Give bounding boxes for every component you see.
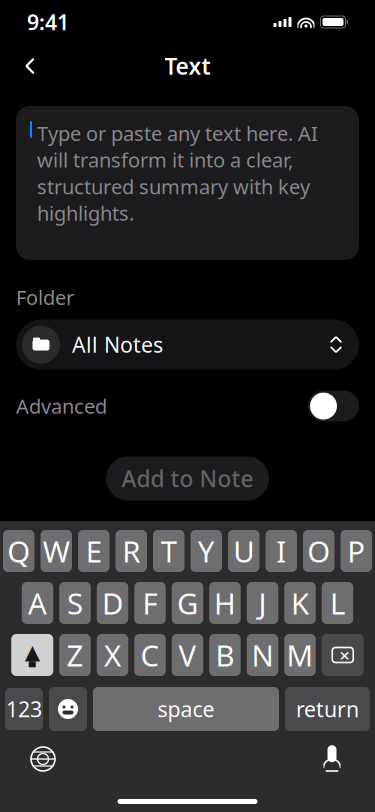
staticText: U: [233, 531, 254, 570]
staticText: C: [140, 635, 159, 674]
button[interactable]: X: [97, 634, 128, 676]
staticText: return: [296, 695, 359, 723]
button[interactable]: D: [97, 582, 128, 624]
button[interactable]: B: [209, 634, 241, 676]
button[interactable]: H: [209, 582, 241, 624]
button[interactable]: N: [247, 634, 278, 676]
button[interactable]: Delete: [322, 634, 364, 676]
button[interactable]: L: [322, 582, 353, 624]
button[interactable]: J: [247, 582, 278, 624]
button[interactable]: E: [78, 530, 109, 572]
button[interactable]: Advanced: [308, 391, 359, 422]
button[interactable]: G: [172, 582, 203, 624]
button[interactable]: I: [265, 530, 297, 572]
button[interactable]: K: [284, 582, 316, 624]
button[interactable]: Z: [59, 634, 91, 676]
button[interactable]: Q: [3, 530, 34, 572]
staticText: Add to Note: [121, 463, 253, 494]
button[interactable]: W: [40, 530, 72, 572]
staticText: N: [251, 635, 273, 674]
button[interactable]: A: [22, 582, 53, 624]
staticText: J: [258, 583, 266, 622]
button[interactable]: R: [115, 530, 147, 572]
staticText: O: [307, 531, 330, 570]
button[interactable]: Emoji: [49, 687, 87, 731]
button[interactable]: F: [134, 582, 166, 624]
staticText: B: [215, 635, 234, 674]
staticText: W: [43, 531, 70, 570]
staticText: Folder: [16, 284, 74, 311]
staticText: G: [177, 583, 198, 622]
staticText: X: [104, 635, 121, 674]
staticText: All Notes: [72, 330, 163, 359]
staticText: H: [214, 583, 236, 622]
button[interactable]: O: [303, 530, 334, 572]
staticText: L: [330, 583, 345, 622]
staticText: V: [178, 635, 196, 674]
staticText: E: [86, 531, 102, 570]
button[interactable]: Y: [190, 530, 222, 572]
staticText: 9:41: [27, 8, 69, 36]
staticText: K: [291, 583, 309, 622]
staticText: I: [276, 531, 286, 570]
staticText: P: [347, 531, 365, 570]
button[interactable]: V: [172, 634, 203, 676]
staticText: R: [122, 531, 140, 570]
staticText: Q: [7, 531, 30, 570]
button[interactable]: M: [284, 634, 316, 676]
staticText: Text: [164, 51, 210, 81]
staticText: Type or paste any text here. AI will tra…: [37, 120, 318, 226]
button[interactable]: C: [134, 634, 166, 676]
button[interactable]: U: [228, 530, 259, 572]
button[interactable]: return: [285, 687, 370, 731]
button[interactable]: Back: [10, 46, 50, 86]
staticText: A: [28, 583, 47, 622]
button[interactable]: Switch keyboard: [21, 739, 65, 779]
button[interactable]: 123: [5, 688, 43, 730]
button[interactable]: Add to Note: [106, 457, 269, 501]
staticText: Y: [198, 531, 215, 570]
button[interactable]: All Notes: [16, 320, 359, 370]
staticText: Z: [66, 635, 83, 674]
button[interactable]: Shift: [11, 634, 53, 676]
staticText: 123: [6, 695, 42, 723]
staticText: ×: [339, 643, 350, 667]
button[interactable]: S: [59, 582, 91, 624]
button[interactable]: Dictate: [310, 739, 354, 779]
staticText: D: [102, 583, 123, 622]
staticText: Advanced: [16, 393, 107, 419]
staticText: F: [142, 583, 157, 622]
staticText: space: [157, 695, 214, 723]
staticText: M: [286, 635, 313, 674]
button[interactable]: P: [340, 530, 372, 572]
staticText: S: [67, 583, 83, 622]
button[interactable]: T: [153, 530, 184, 572]
button[interactable]: space: [93, 687, 279, 731]
staticText: ▲: [25, 641, 40, 663]
staticText: T: [161, 531, 177, 570]
